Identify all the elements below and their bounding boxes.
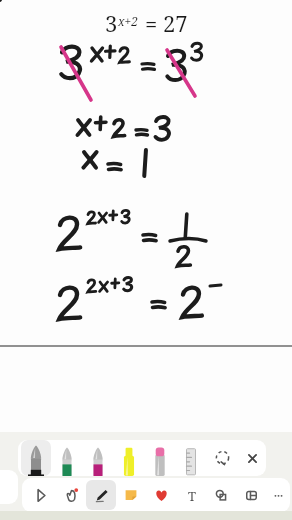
staticText: = 27 — [145, 8, 188, 38]
button[interactable]: Reactions — [146, 480, 176, 510]
button[interactable]: Black pen — [21, 440, 51, 476]
button[interactable]: Undo — [0, 470, 18, 504]
staticText: T — [188, 487, 196, 504]
button[interactable]: Sticky note — [116, 480, 146, 510]
button[interactable]: Magenta pen — [82, 440, 113, 476]
button[interactable]: Ruler — [175, 440, 206, 476]
button[interactable]: Yellow highlighter — [113, 440, 144, 476]
button[interactable]: Text — [176, 480, 206, 510]
button[interactable]: Close — [238, 440, 266, 476]
staticText: x+2 — [118, 13, 138, 29]
button[interactable]: Shapes — [206, 480, 236, 510]
button[interactable]: Green pen — [51, 440, 82, 476]
button[interactable]: Templates — [236, 480, 266, 510]
button[interactable]: Hand / lasso — [56, 480, 86, 510]
button[interactable]: Lasso select — [206, 440, 238, 476]
button[interactable]: More options — [266, 480, 290, 510]
staticText: 3 — [105, 8, 118, 38]
button[interactable]: Eraser — [144, 440, 175, 476]
button[interactable]: Pen — [86, 480, 116, 510]
button[interactable]: Select — [26, 480, 56, 510]
